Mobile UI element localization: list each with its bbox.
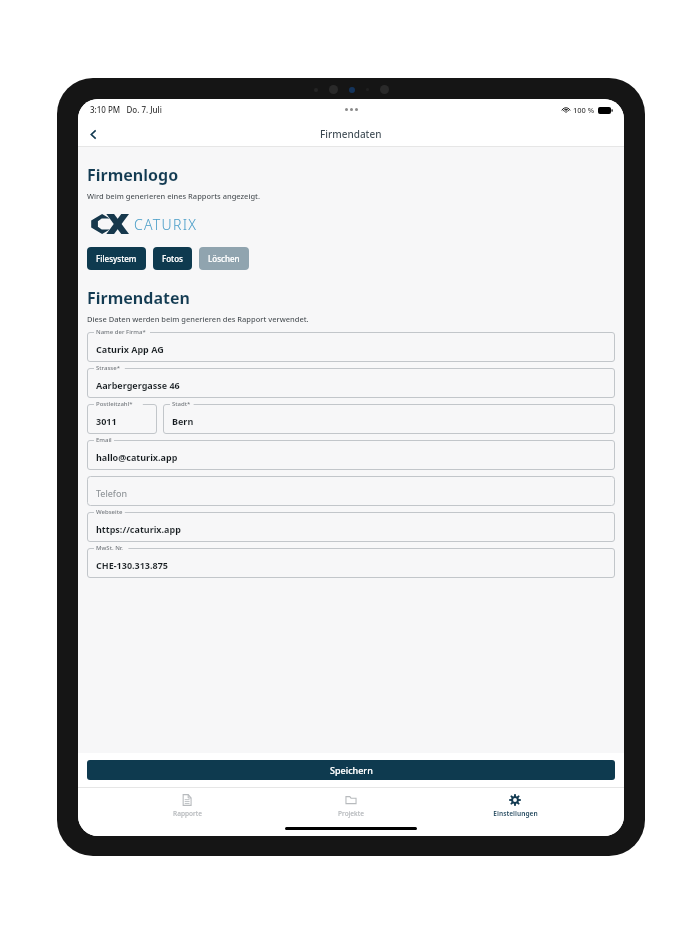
staticText: CHE-130.313.875 bbox=[96, 559, 168, 571]
button[interactable]: Strasse* bbox=[87, 368, 615, 398]
staticText: Email bbox=[96, 436, 112, 444]
staticText: 100 % bbox=[573, 105, 595, 115]
button[interactable]: Telefon bbox=[87, 476, 615, 506]
staticText: Strasse* bbox=[96, 364, 121, 372]
button[interactable]: Löschen bbox=[199, 247, 249, 270]
staticText: Stadt* bbox=[172, 400, 191, 408]
staticText: Diese Daten werden beim generieren des R… bbox=[87, 314, 309, 324]
button[interactable]: Webseite bbox=[87, 512, 615, 542]
button[interactable]: Postleitzahl* bbox=[87, 404, 157, 434]
staticText: Postleitzahl* bbox=[96, 400, 133, 408]
button[interactable]: MwSt. Nr. bbox=[87, 548, 615, 578]
staticText: Einstellungen bbox=[493, 809, 538, 818]
staticText: Speichern bbox=[330, 764, 373, 776]
button[interactable]: Einstellungen bbox=[460, 792, 570, 820]
button[interactable]: Stadt* bbox=[163, 404, 615, 434]
staticText: Fotos bbox=[162, 253, 183, 264]
button[interactable]: Projekte bbox=[296, 792, 406, 820]
staticText: Firmendaten bbox=[87, 287, 190, 309]
button[interactable]: Fotos bbox=[153, 247, 192, 270]
staticText: Wird beim generieren eines Rapports ange… bbox=[87, 191, 261, 201]
staticText: Caturix App AG bbox=[96, 343, 164, 355]
button[interactable]: Email bbox=[87, 440, 615, 470]
staticText: 3011 bbox=[96, 415, 117, 427]
staticText: 3:10 PM Do. 7. Juli bbox=[90, 104, 162, 115]
staticText: hallo@caturix.app bbox=[96, 451, 178, 463]
staticText: Webseite bbox=[96, 508, 123, 516]
staticText: Filesystem bbox=[96, 253, 137, 264]
staticText: Telefon bbox=[96, 487, 127, 499]
button[interactable]: Rapporte bbox=[132, 792, 242, 820]
staticText: Name der Firma* bbox=[96, 328, 146, 336]
staticText: Aarbergergasse 46 bbox=[96, 379, 180, 391]
button[interactable]: Filesystem bbox=[87, 247, 146, 270]
staticText: Rapporte bbox=[173, 809, 202, 818]
button[interactable]: Back bbox=[81, 122, 105, 146]
staticText: Projekte bbox=[338, 809, 364, 818]
staticText: CATURIX bbox=[134, 215, 198, 234]
staticText: Firmendaten bbox=[320, 127, 382, 141]
button[interactable]: Speichern bbox=[87, 760, 615, 780]
staticText: https://caturix.app bbox=[96, 523, 181, 535]
button[interactable]: Name der Firma* bbox=[87, 332, 615, 362]
staticText: Firmenlogo bbox=[87, 164, 179, 186]
staticText: Löschen bbox=[208, 253, 240, 264]
staticText: MwSt. Nr. bbox=[96, 544, 124, 552]
staticText: Bern bbox=[172, 415, 194, 427]
